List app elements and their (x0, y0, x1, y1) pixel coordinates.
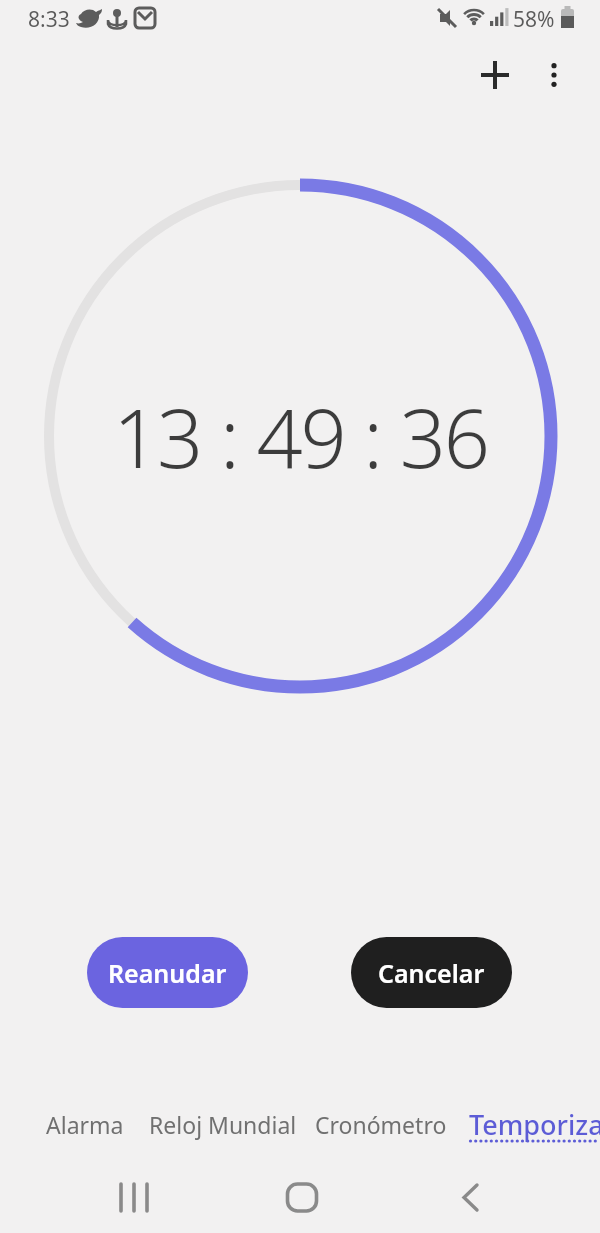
button[interactable]: Cronómetro (315, 1106, 447, 1142)
button[interactable]: Cancelar (351, 937, 512, 1008)
button[interactable]: Temporizador (469, 1106, 600, 1142)
button[interactable] (108, 1172, 160, 1224)
staticText: Temporizador (469, 1106, 600, 1142)
button[interactable]: Alarma (46, 1106, 124, 1142)
button[interactable]: Reanudar (87, 937, 248, 1008)
staticText: 8:33 (28, 5, 70, 34)
staticText: Cronómetro (315, 1109, 447, 1140)
staticText: Cancelar (378, 956, 485, 990)
button[interactable]: Reloj Mundial (149, 1106, 297, 1142)
staticText: Reanudar (108, 956, 227, 990)
staticText: 13 : 49 : 36 (113, 381, 488, 491)
button[interactable]: 8:33 (28, 4, 70, 34)
button[interactable] (473, 53, 517, 97)
staticText: Alarma (46, 1109, 124, 1140)
button[interactable] (276, 1172, 328, 1224)
button[interactable] (531, 53, 575, 97)
staticText: Reloj Mundial (149, 1109, 297, 1140)
button[interactable] (444, 1172, 496, 1224)
staticText: 58% (513, 5, 555, 34)
